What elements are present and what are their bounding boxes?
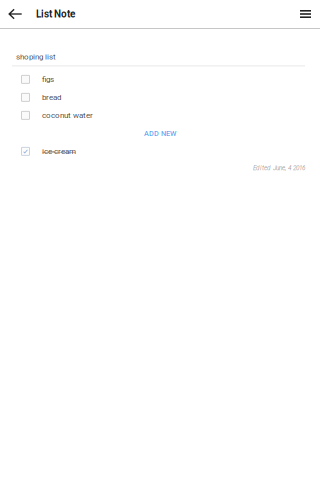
button[interactable]: Back bbox=[0, 0, 30, 28]
button[interactable]: ADD NEW bbox=[0, 124, 320, 142]
staticText: coconut water bbox=[42, 111, 93, 120]
button[interactable]: bread bbox=[0, 88, 320, 106]
staticText: shoping list bbox=[16, 52, 56, 61]
button[interactable]: ice-cream bbox=[0, 142, 320, 160]
button[interactable]: shoping list bbox=[0, 52, 320, 61]
staticText: Edited June, 4 2016 bbox=[253, 164, 305, 172]
staticText: figs bbox=[42, 75, 54, 84]
staticText: ADD NEW bbox=[144, 129, 176, 138]
staticText: List Note bbox=[36, 8, 75, 20]
staticText: ice-cream bbox=[42, 147, 76, 156]
staticText: bread bbox=[42, 93, 62, 102]
button[interactable]: figs bbox=[0, 70, 320, 88]
button[interactable]: List Note bbox=[30, 0, 75, 28]
button[interactable]: coconut water bbox=[0, 106, 320, 124]
button[interactable]: More options bbox=[293, 0, 318, 28]
